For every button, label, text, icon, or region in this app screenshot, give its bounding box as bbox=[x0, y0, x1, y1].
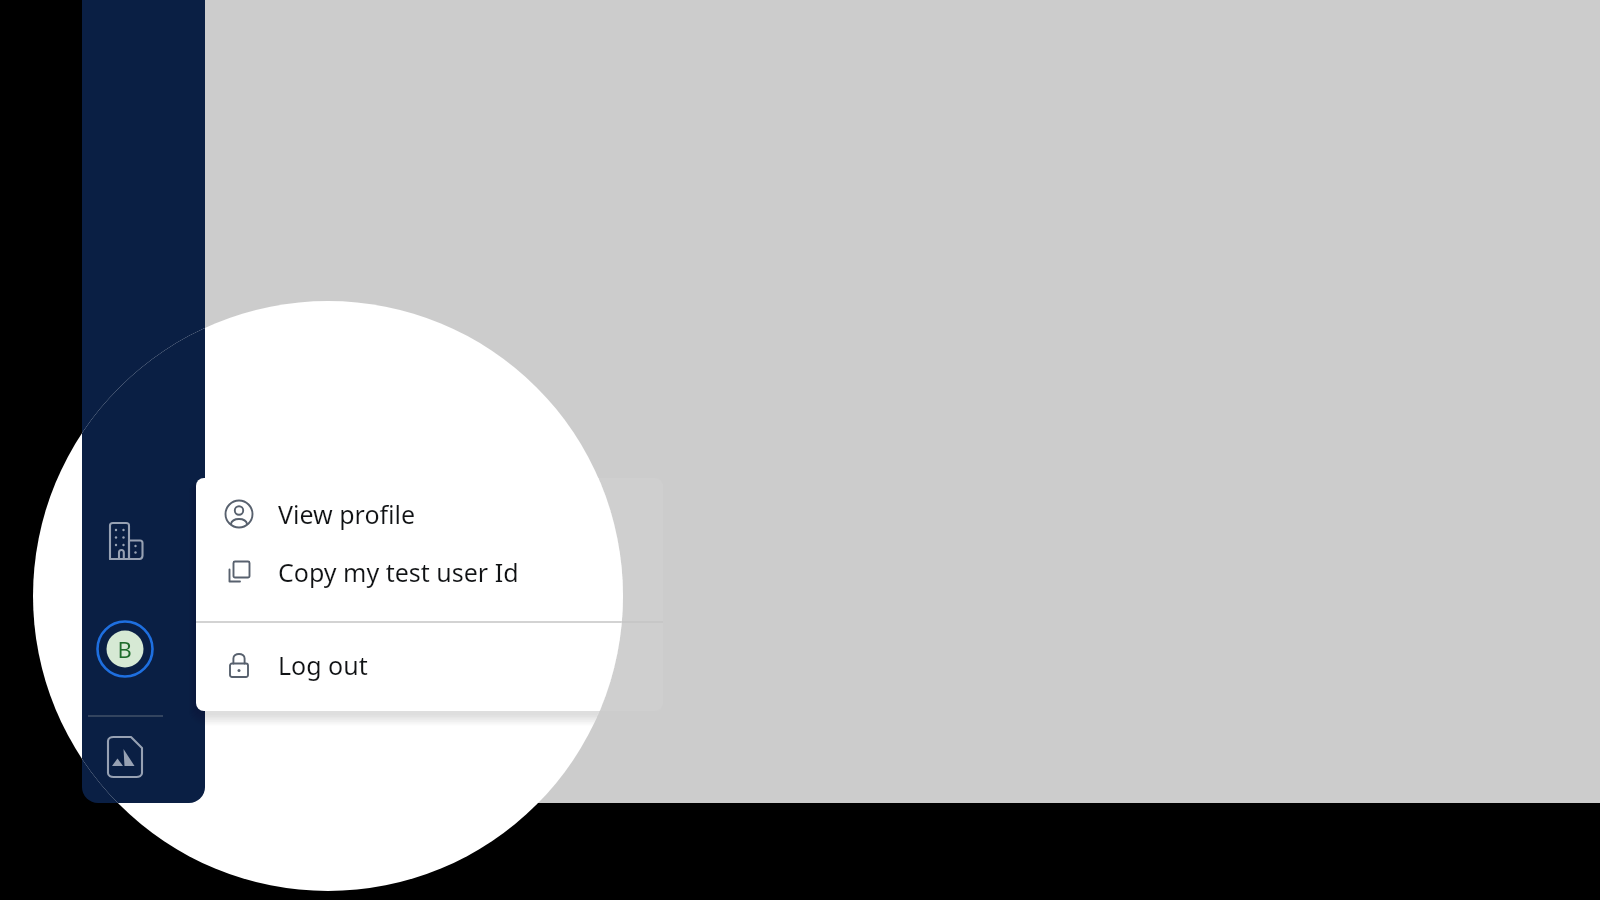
button[interactable]: Log out bbox=[196, 636, 663, 694]
button[interactable]: App switcher bbox=[100, 733, 150, 783]
button[interactable]: Organisations bbox=[103, 519, 148, 564]
button[interactable]: View profile bbox=[196, 485, 663, 543]
button[interactable]: Copy my test user Id bbox=[196, 543, 663, 601]
button[interactable]: Your profile and settings bbox=[97, 621, 153, 677]
